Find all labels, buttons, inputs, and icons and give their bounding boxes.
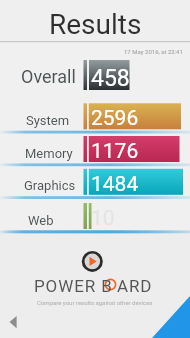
staticText: Results bbox=[49, 8, 142, 41]
staticText: ARD bbox=[117, 276, 153, 296]
staticText: 17 May 2016, at 22:41 bbox=[124, 48, 183, 55]
staticText: System bbox=[26, 113, 70, 128]
staticText: POWER B bbox=[34, 276, 113, 296]
staticText: Memory bbox=[25, 146, 73, 161]
staticText: 1176 bbox=[91, 139, 139, 164]
staticText: Compare your results against other devic… bbox=[37, 299, 153, 306]
staticText: 1484 bbox=[91, 172, 139, 197]
staticText: Overall bbox=[21, 66, 76, 87]
staticText: 2596 bbox=[91, 106, 139, 131]
staticText: Web bbox=[28, 213, 54, 228]
staticText: Graphics bbox=[24, 178, 76, 193]
staticText: 458 bbox=[91, 65, 130, 92]
staticText: 10 bbox=[91, 206, 115, 231]
